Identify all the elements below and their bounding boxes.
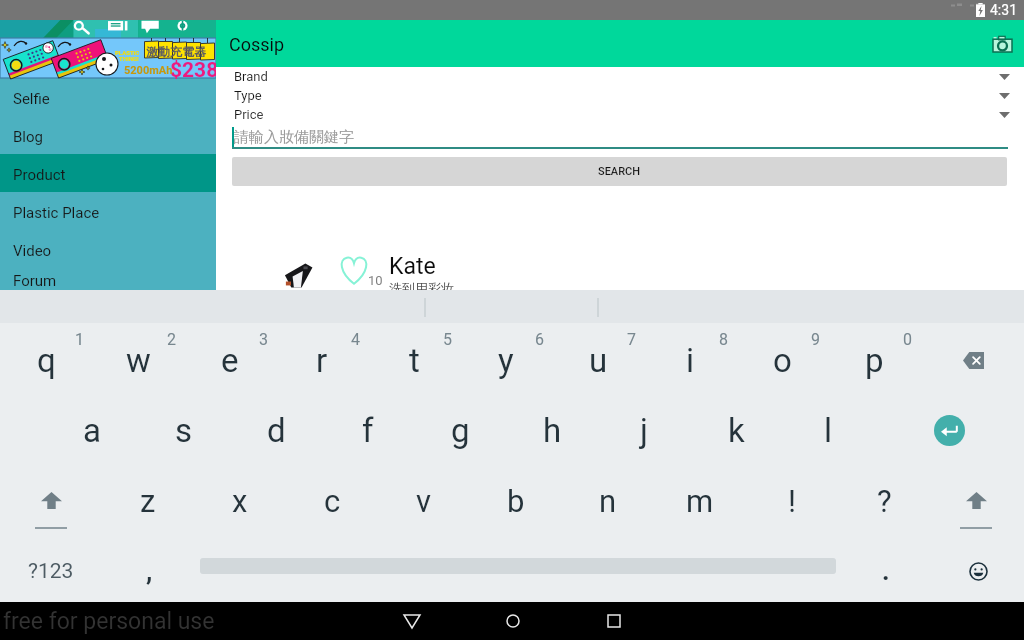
staticText: Forum xyxy=(13,272,57,290)
staticText: , xyxy=(146,556,153,586)
button[interactable]: SEARCH xyxy=(232,157,1007,186)
staticText: 洗到用彩妆 xyxy=(389,280,454,296)
staticText: h xyxy=(543,411,562,450)
button[interactable]: . xyxy=(840,540,932,602)
button[interactable]: a xyxy=(46,397,138,463)
button[interactable]: Back xyxy=(361,602,462,640)
button[interactable]: c xyxy=(286,468,378,534)
button[interactable]: Shift xyxy=(930,468,1022,534)
button[interactable]: Price xyxy=(216,105,1024,124)
button[interactable]: m xyxy=(654,468,746,534)
staticText: Blog xyxy=(13,128,43,146)
staticText: 5200mAh xyxy=(124,64,173,77)
staticText: 10 xyxy=(368,273,383,288)
button[interactable]: , xyxy=(103,540,195,602)
button[interactable]: v xyxy=(378,468,470,534)
staticText: Product xyxy=(13,166,66,184)
staticText: n xyxy=(599,483,617,519)
staticText: e xyxy=(221,341,239,380)
staticText: THING! xyxy=(119,55,139,62)
staticText: 激動充電器 xyxy=(146,44,206,59)
button[interactable]: b xyxy=(470,468,562,534)
button[interactable]: ?123 xyxy=(5,540,97,602)
staticText: l xyxy=(824,411,833,450)
staticText: z xyxy=(140,483,156,519)
button[interactable]: y xyxy=(460,326,552,394)
button[interactable]: 10 xyxy=(216,242,1024,290)
button[interactable]: f xyxy=(322,397,414,463)
staticText: c xyxy=(324,483,341,519)
button[interactable]: l xyxy=(782,397,874,463)
staticText: s xyxy=(175,411,193,450)
button[interactable]: r xyxy=(276,326,368,394)
staticText: Price xyxy=(234,107,264,122)
button[interactable]: Product xyxy=(0,154,216,192)
button[interactable]: p xyxy=(828,326,920,394)
staticText: ! xyxy=(788,483,796,519)
button[interactable]: z xyxy=(102,468,194,534)
button[interactable]: i xyxy=(644,326,736,394)
staticText: 4 xyxy=(351,330,360,349)
button[interactable]: q xyxy=(0,326,92,394)
button[interactable]: ? xyxy=(838,468,930,534)
button[interactable]: Camera xyxy=(987,29,1017,59)
staticText: 5 xyxy=(443,330,452,349)
staticText: . xyxy=(882,556,890,586)
button[interactable]: ! xyxy=(746,468,838,534)
staticText: y xyxy=(498,341,514,380)
button[interactable]: Home xyxy=(462,602,563,640)
staticText: b xyxy=(507,483,525,519)
button[interactable]: g xyxy=(414,397,506,463)
button[interactable]: Brand xyxy=(216,67,1024,86)
staticText: x xyxy=(232,483,248,519)
staticText: 0 xyxy=(903,330,912,349)
staticText: 7 xyxy=(627,330,636,349)
staticText: 2 xyxy=(167,330,176,349)
button[interactable]: d xyxy=(230,397,322,463)
staticText: v xyxy=(416,483,432,519)
button[interactable]: w xyxy=(92,326,184,394)
button[interactable]: Emoji xyxy=(932,540,1024,602)
button[interactable]: Video xyxy=(0,230,216,268)
staticText: g xyxy=(451,411,470,450)
staticText: i xyxy=(686,341,695,380)
staticText: 1 xyxy=(75,330,84,349)
button[interactable]: h xyxy=(506,397,598,463)
staticText: m xyxy=(686,483,714,519)
button[interactable]: j xyxy=(598,397,690,463)
button[interactable]: Shift xyxy=(5,468,97,534)
button[interactable]: s xyxy=(138,397,230,463)
button[interactable]: Forum xyxy=(0,268,216,290)
staticText: o xyxy=(773,341,792,380)
button[interactable]: t xyxy=(368,326,460,394)
button[interactable]: u xyxy=(552,326,644,394)
staticText: Cossip xyxy=(229,34,285,55)
button[interactable]: e xyxy=(184,326,276,394)
button[interactable]: Recents xyxy=(563,602,664,640)
staticText: j xyxy=(640,411,648,450)
staticText: Selfie xyxy=(13,90,50,108)
staticText: p xyxy=(865,341,884,380)
staticText: SEARCH xyxy=(598,165,641,178)
button[interactable]: n xyxy=(562,468,654,534)
staticText: q xyxy=(37,341,56,380)
button[interactable]: x xyxy=(194,468,286,534)
button[interactable]: Blog xyxy=(0,116,216,154)
staticText: t xyxy=(409,341,420,380)
staticText: Kate xyxy=(389,253,436,280)
button[interactable]: Enter xyxy=(903,397,995,463)
staticText: 3 xyxy=(259,330,268,349)
staticText: f xyxy=(362,411,374,450)
button[interactable]: o xyxy=(736,326,828,394)
staticText: Brand xyxy=(234,69,268,84)
button[interactable]: Plastic Place xyxy=(0,192,216,230)
button[interactable]: k xyxy=(690,397,782,463)
staticText: 6 xyxy=(535,330,544,349)
staticText: ? xyxy=(877,483,892,519)
button[interactable]: Type xyxy=(216,86,1024,105)
staticText: free for personal use xyxy=(3,608,215,635)
button[interactable]: Selfie xyxy=(0,78,216,116)
button[interactable]: Backspace xyxy=(927,326,1019,394)
